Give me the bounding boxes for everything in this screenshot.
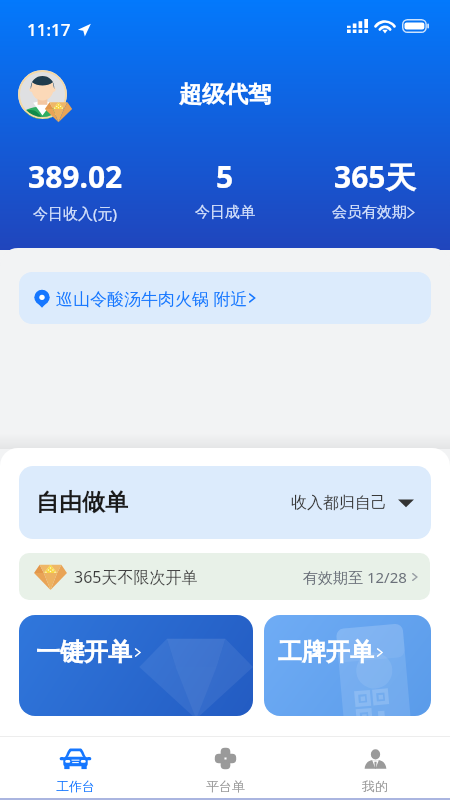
staticText: 今日成单 [195, 203, 255, 222]
staticText: 365天 [334, 156, 416, 197]
staticText: 巡山令酸汤牛肉火锅 附近 [56, 287, 248, 310]
button[interactable]: 389.02 [0, 156, 150, 223]
button[interactable]: 5 [150, 156, 300, 222]
staticText: 自由做单 [36, 488, 128, 517]
staticText: 有效期至 12/28 [303, 567, 407, 587]
button[interactable]: 平台单 [150, 737, 300, 798]
button[interactable]: 365天不限次开单 [19, 553, 430, 600]
staticText: 平台单 [206, 778, 245, 794]
staticText: 工牌开单 [278, 637, 374, 667]
staticText: 会员有效期 [332, 203, 407, 222]
staticText: 超级代驾 [0, 80, 450, 109]
button[interactable]: 巡山令酸汤牛肉火锅 附近 [19, 272, 431, 324]
button[interactable]: 工牌开单 [264, 615, 431, 716]
button[interactable]: Profile [18, 70, 74, 126]
button[interactable]: 工作台 [0, 737, 150, 798]
staticText: 今日收入(元) [33, 203, 118, 223]
staticText: 工作台 [56, 778, 95, 794]
staticText: 我的 [362, 778, 388, 794]
button[interactable]: 自由做单 [19, 466, 431, 539]
staticText: 389.02 [28, 156, 123, 197]
button[interactable]: 一键开单 [19, 615, 253, 716]
staticText: 一键开单 [36, 637, 132, 667]
staticText: 收入都归自己 [291, 493, 387, 513]
button[interactable]: 365天 [300, 156, 450, 222]
staticText: 365天不限次开单 [74, 566, 198, 588]
staticText: 5 [216, 156, 234, 197]
button[interactable]: 我的 [300, 737, 450, 798]
staticText: 11:17 [27, 18, 71, 41]
